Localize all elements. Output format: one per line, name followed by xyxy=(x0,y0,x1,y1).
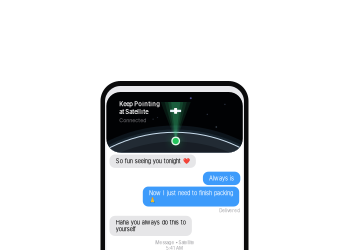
staticText: So fun seeing you tonight ❤️ xyxy=(116,158,190,165)
staticText: Always is xyxy=(209,175,234,182)
staticText: Delivered xyxy=(219,208,240,213)
staticText: Haha you always do this to yourself xyxy=(116,219,186,233)
staticText: 5:41 AM xyxy=(166,245,183,250)
staticText: iMessage • Satellite xyxy=(155,240,195,245)
staticText: Connected xyxy=(119,117,146,123)
staticText: Now I just need to finish packing 🙏 xyxy=(149,190,233,203)
staticText: at Satellite xyxy=(119,108,148,115)
staticText: Keep Pointing xyxy=(119,101,160,108)
